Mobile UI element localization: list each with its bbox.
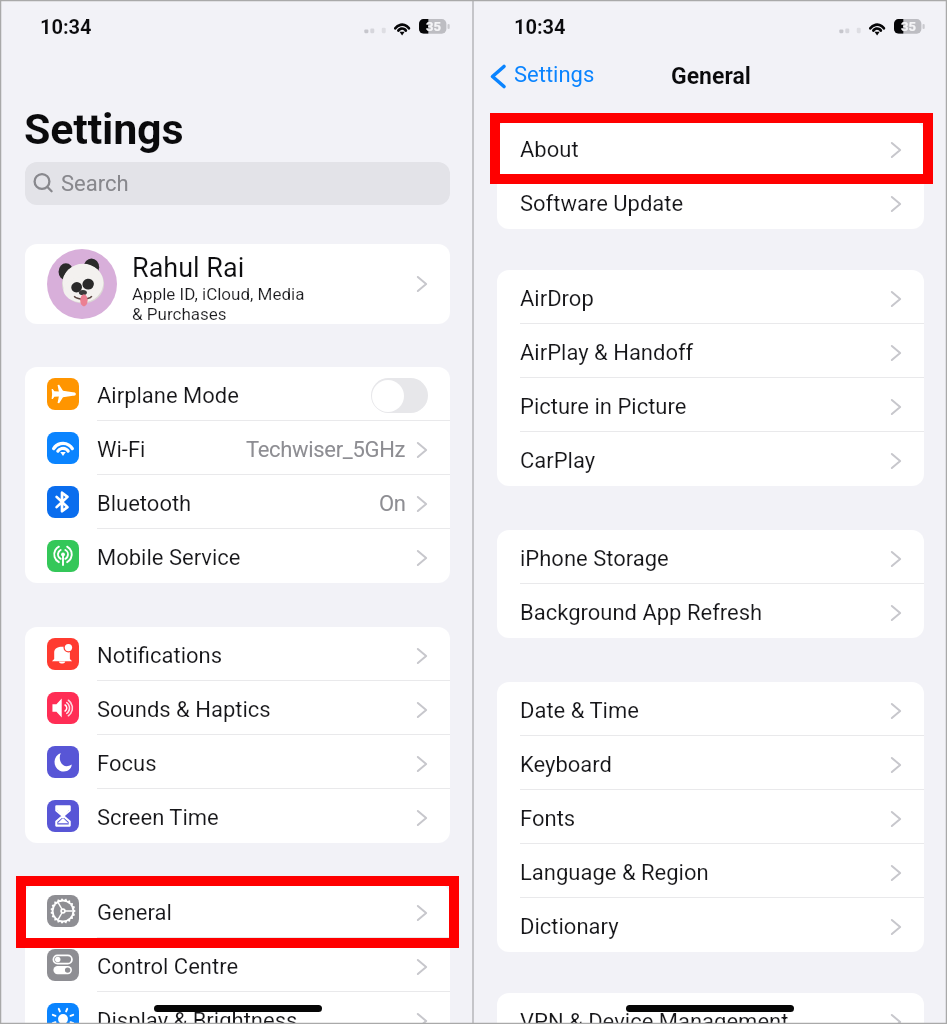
button[interactable]: Notifications	[25, 627, 450, 681]
button[interactable]: VPN & Device Management	[497, 993, 924, 1024]
button[interactable]: Control Centre	[25, 938, 450, 992]
button[interactable]: Fonts	[497, 790, 924, 844]
staticText: About	[520, 137, 579, 163]
button[interactable]: General	[25, 884, 450, 938]
button[interactable]: Search	[25, 162, 450, 205]
staticText: Techwiser_5GHz	[246, 437, 406, 463]
button[interactable]: AirDrop	[497, 270, 924, 324]
button[interactable]: AirPlay & Handoff	[497, 324, 924, 378]
staticText: Background App Refresh	[520, 600, 763, 626]
staticText: Airplane Mode	[97, 383, 239, 409]
staticText: Sounds & Haptics	[97, 697, 271, 723]
button[interactable]: Wi-Fi	[25, 421, 450, 475]
button[interactable]: Background App Refresh	[497, 584, 924, 638]
staticText: Search	[61, 171, 129, 197]
button[interactable]: Mobile Service	[25, 529, 450, 583]
staticText: Bluetooth	[97, 491, 192, 517]
staticText: On	[379, 491, 406, 517]
staticText: Control Centre	[97, 954, 239, 980]
button[interactable]: Picture in Picture	[497, 378, 924, 432]
button[interactable]: Airplane Mode	[25, 367, 450, 421]
staticText: 10:34	[514, 15, 566, 38]
button[interactable]: Language & Region	[497, 844, 924, 898]
button[interactable]: Date & Time	[497, 682, 924, 736]
staticText: General	[671, 63, 751, 90]
staticText: Fonts	[520, 806, 576, 832]
staticText: Settings	[514, 62, 595, 88]
button[interactable]: Software Update	[497, 175, 924, 229]
staticText: 35	[901, 19, 916, 34]
staticText: VPN & Device Management	[520, 1009, 789, 1024]
button[interactable]: Back to Settings	[482, 57, 599, 95]
staticText: Mobile Service	[97, 545, 241, 571]
staticText: & Purchases	[132, 304, 227, 324]
staticText: Screen Time	[97, 805, 219, 831]
staticText: AirPlay & Handoff	[520, 340, 694, 366]
staticText: Notifications	[97, 643, 223, 669]
button[interactable]: Airplane Mode toggle	[371, 378, 428, 413]
staticText: 35	[426, 19, 441, 34]
staticText: Apple ID, iCloud, Media	[132, 284, 305, 304]
staticText: Wi-Fi	[97, 437, 146, 463]
staticText: Language & Region	[520, 860, 709, 886]
staticText: Date & Time	[520, 698, 639, 724]
staticText: Dictionary	[520, 914, 619, 940]
staticText: Keyboard	[520, 752, 612, 778]
staticText: Software Update	[520, 191, 684, 217]
staticText: iPhone Storage	[520, 546, 669, 572]
staticText: Rahul Rai	[132, 252, 245, 284]
button[interactable]: Keyboard	[497, 736, 924, 790]
button[interactable]: Screen Time	[25, 789, 450, 843]
button[interactable]: Bluetooth	[25, 475, 450, 529]
button[interactable]: Focus	[25, 735, 450, 789]
staticText: Settings	[24, 104, 184, 154]
button[interactable]: iPhone Storage	[497, 530, 924, 584]
staticText: Picture in Picture	[520, 394, 687, 420]
button[interactable]: CarPlay	[497, 432, 924, 486]
staticText: General	[97, 900, 172, 926]
staticText: CarPlay	[520, 448, 596, 474]
button[interactable]: Rahul Rai	[25, 244, 450, 324]
staticText: Focus	[97, 751, 157, 777]
button[interactable]: Display & Brightness	[25, 992, 450, 1024]
button[interactable]: Dictionary	[497, 898, 924, 952]
button[interactable]: About	[497, 121, 924, 175]
staticText: Display & Brightness	[97, 1008, 298, 1024]
button[interactable]: Sounds & Haptics	[25, 681, 450, 735]
staticText: AirDrop	[520, 286, 594, 312]
staticText: 10:34	[40, 15, 92, 38]
